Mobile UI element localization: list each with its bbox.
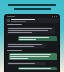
button[interactable] [7,62,46,65]
button[interactable]: Profile [7,19,10,22]
button[interactable] [7,43,46,48]
button[interactable]: More options [55,20,57,22]
button[interactable] [7,27,55,34]
button[interactable] [9,53,57,60]
button[interactable] [18,67,57,70]
button[interactable]: Profile [5,18,59,23]
button[interactable] [18,36,57,41]
